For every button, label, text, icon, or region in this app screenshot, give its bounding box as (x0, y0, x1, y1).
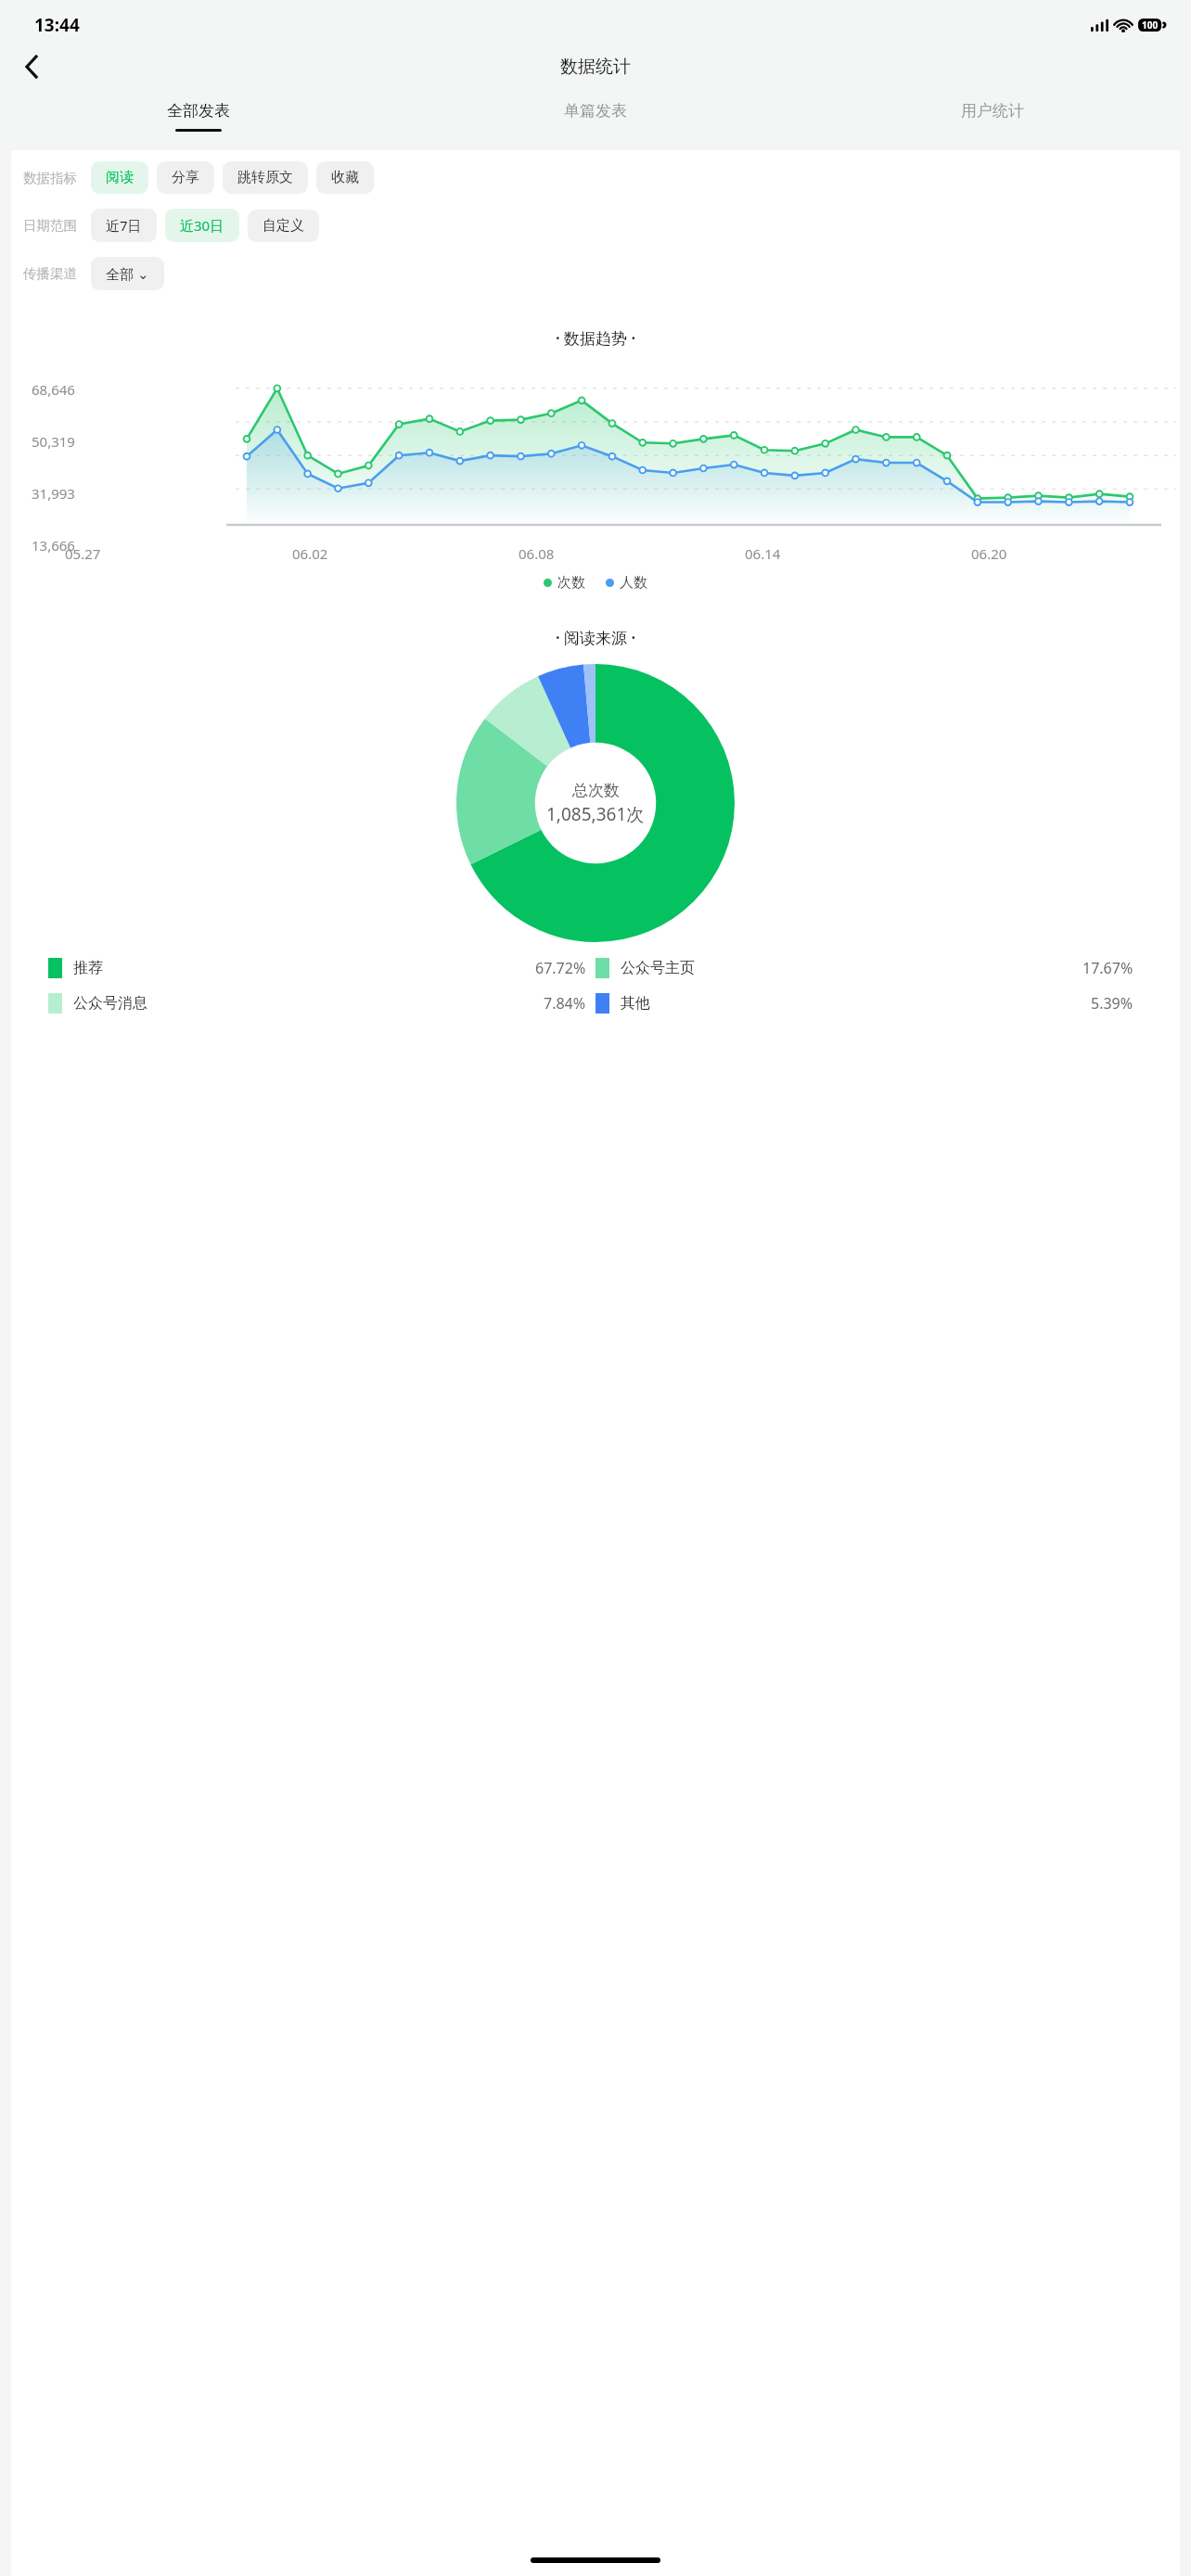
button[interactable]: 单篇发表 (397, 90, 794, 144)
staticText: 100 (1142, 19, 1159, 32)
staticText: 分享 (172, 169, 199, 186)
button[interactable]: 跳转原文 (223, 161, 308, 194)
staticText: 阅读 (106, 169, 134, 186)
staticText: 68,646 (32, 380, 75, 399)
button[interactable]: Back (11, 46, 52, 87)
button[interactable]: 阅读 (91, 161, 148, 194)
staticText: 推荐 (73, 959, 103, 977)
staticText: 数据统计 (560, 56, 631, 78)
staticText: 06.14 (745, 544, 781, 563)
staticText: 05.27 (65, 544, 101, 563)
staticText: 全部 ⌄ (106, 264, 149, 283)
button[interactable]: 收藏 (316, 161, 374, 194)
button[interactable]: 近30日 (165, 209, 239, 242)
staticText: 13:44 (34, 13, 80, 37)
button[interactable]: 分享 (157, 161, 214, 194)
staticText: 总次数 (572, 781, 620, 800)
staticText: · 数据趋势 · (556, 327, 636, 349)
staticText: 公众号消息 (73, 994, 147, 1013)
staticText: 自定义 (263, 217, 304, 235)
staticText: 日期范围 (23, 217, 77, 234)
staticText: 7.84% (544, 993, 586, 1014)
staticText: 跳转原文 (237, 169, 293, 186)
staticText: 13,666 (32, 536, 75, 555)
staticText: 其他 (621, 994, 650, 1013)
button[interactable]: 全部发表 (0, 90, 397, 144)
staticText: 06.08 (519, 544, 555, 563)
staticText: 67.72% (535, 958, 586, 978)
staticText: 近30日 (180, 216, 224, 235)
staticText: 06.20 (971, 544, 1007, 563)
staticText: 人数 (620, 574, 647, 592)
staticText: 全部发表 (167, 101, 230, 121)
button[interactable]: 推荐 (48, 958, 595, 978)
staticText: 单篇发表 (564, 101, 627, 121)
staticText: 传播渠道 (23, 265, 77, 282)
staticText: · 阅读来源 · (556, 627, 636, 648)
button[interactable]: 公众号消息 (48, 993, 595, 1014)
button[interactable]: 公众号主页 (595, 958, 1143, 978)
button[interactable]: 全部 ⌄ (91, 257, 164, 290)
staticText: 06.02 (292, 544, 328, 563)
staticText: 数据指标 (23, 170, 77, 186)
button[interactable]: 自定义 (248, 210, 319, 242)
staticText: 近7日 (106, 216, 142, 235)
staticText: 收藏 (331, 169, 359, 186)
staticText: 用户统计 (961, 101, 1024, 121)
staticText: 次数 (557, 574, 585, 592)
staticText: 31,993 (32, 484, 75, 503)
staticText: 1,085,361次 (546, 802, 645, 826)
button[interactable]: 近7日 (91, 209, 157, 242)
button[interactable]: 用户统计 (794, 90, 1191, 144)
staticText: 17.67% (1082, 958, 1133, 978)
button[interactable]: 其他 (595, 993, 1143, 1014)
staticText: 50,319 (32, 432, 75, 451)
staticText: 公众号主页 (621, 959, 695, 977)
staticText: 5.39% (1091, 993, 1133, 1014)
